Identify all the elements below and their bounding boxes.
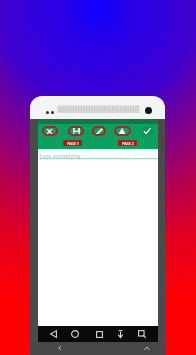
button[interactable]: Recents bbox=[91, 326, 107, 342]
button[interactable]: Back bbox=[45, 326, 61, 342]
staticText: Type something bbox=[39, 152, 81, 159]
button[interactable]: Zoom bbox=[134, 326, 150, 342]
button[interactable]: Save bbox=[69, 124, 83, 138]
button[interactable]: Close bbox=[42, 124, 56, 138]
button[interactable]: Warning bbox=[115, 124, 129, 138]
button[interactable]: Edit bbox=[92, 124, 106, 138]
button[interactable]: Save bbox=[112, 326, 128, 342]
staticText: PAGE 2 bbox=[122, 141, 134, 146]
button[interactable]: Done bbox=[141, 127, 153, 135]
button[interactable]: Done bbox=[140, 124, 154, 138]
button[interactable]: Home bbox=[67, 326, 83, 342]
staticText: PAGE 1 bbox=[67, 141, 79, 146]
